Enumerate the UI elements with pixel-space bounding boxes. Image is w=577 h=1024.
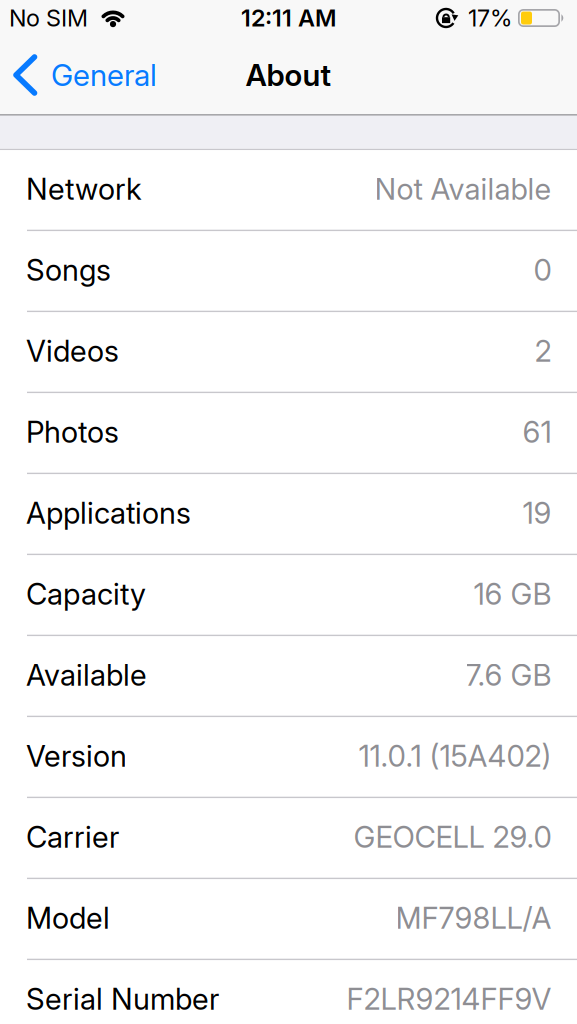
staticText: MF798LL/A xyxy=(395,900,551,936)
staticText: GEOCELL 29.0 xyxy=(353,819,551,855)
staticText: Videos xyxy=(26,333,119,369)
staticText: Not Available xyxy=(374,171,551,207)
staticText: Model xyxy=(26,900,110,936)
staticText: Capacity xyxy=(26,576,146,612)
staticText: No SIM xyxy=(9,4,88,32)
staticText: 19 xyxy=(522,495,551,531)
staticText: 17% xyxy=(468,4,512,32)
staticText: Applications xyxy=(26,495,191,531)
staticText: Available xyxy=(26,657,147,693)
staticText: 0 xyxy=(533,252,551,288)
staticText: 16 GB xyxy=(473,576,551,612)
staticText: Version xyxy=(26,738,127,774)
staticText: Network xyxy=(26,171,142,207)
staticText: General xyxy=(51,57,157,93)
staticText: F2LR9214FF9V xyxy=(346,981,551,1017)
staticText: Photos xyxy=(26,414,119,450)
staticText: 12:11 AM xyxy=(241,4,336,32)
staticText: 61 xyxy=(522,414,551,450)
staticText: About xyxy=(245,57,331,93)
button[interactable]: Back to General xyxy=(0,54,157,95)
staticText: Serial Number xyxy=(26,981,219,1017)
staticText: Songs xyxy=(26,252,111,288)
staticText: 7.6 GB xyxy=(465,657,551,693)
staticText: 11.0.1 (15A402) xyxy=(358,738,551,774)
staticText: Carrier xyxy=(26,819,119,855)
staticText: 2 xyxy=(534,333,551,369)
